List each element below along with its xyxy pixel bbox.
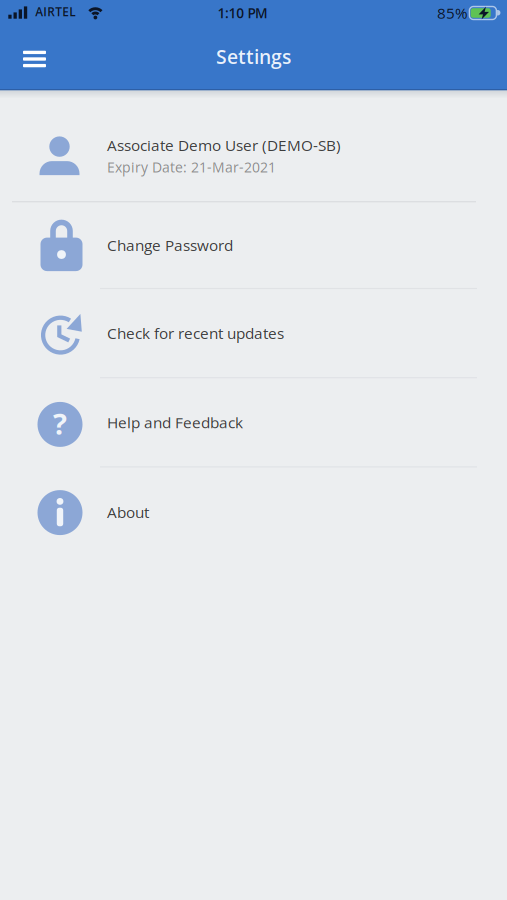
staticText: 85% <box>437 2 468 23</box>
staticText: Check for recent updates <box>107 323 284 344</box>
button[interactable]: Change Password <box>0 202 507 288</box>
staticText: AIRTEL <box>35 3 75 20</box>
staticText: ? <box>53 403 67 443</box>
button[interactable]: Menu <box>0 50 46 67</box>
staticText: Change Password <box>107 235 233 256</box>
button[interactable]: Associate Demo User (DEMO-SB) <box>0 99 507 201</box>
staticText: Help and Feedback <box>107 412 243 433</box>
staticText: About <box>107 502 149 522</box>
staticText: Expiry Date: 21-Mar-2021 <box>107 157 276 177</box>
button[interactable]: Check for recent updates <box>0 289 507 377</box>
staticText: Associate Demo User (DEMO-SB) <box>107 135 341 155</box>
button[interactable]: ? <box>0 378 507 466</box>
staticText: Settings <box>216 43 291 70</box>
button[interactable]: About <box>0 467 507 556</box>
staticText: 1:10 PM <box>217 3 268 22</box>
